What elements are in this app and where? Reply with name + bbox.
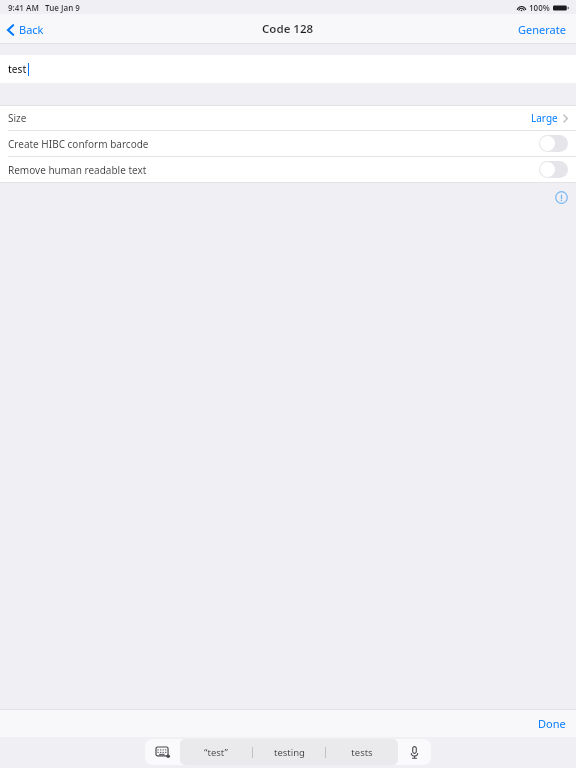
button[interactable]: Done (528, 711, 576, 736)
staticText: tests (351, 746, 373, 759)
staticText: Create HIBC conform barcode (8, 137, 149, 151)
button[interactable]: “test” (180, 739, 252, 765)
staticText: Remove human readable text (8, 163, 147, 177)
staticText: 9:41 AM (8, 2, 39, 13)
staticText: testing (274, 746, 305, 759)
other: Create HIBC conform barcode (539, 135, 568, 152)
button[interactable]: tests (326, 739, 398, 765)
staticText: Large (531, 111, 558, 125)
button[interactable]: Keyboard (145, 739, 180, 765)
staticText: test (8, 62, 27, 76)
other: Remove human readable text (539, 161, 568, 178)
staticText: Generate (518, 22, 566, 37)
button[interactable]: Info (555, 191, 568, 204)
button[interactable]: Size (0, 106, 576, 130)
button[interactable]: Generate (508, 17, 576, 42)
staticText: Size (8, 111, 27, 125)
button[interactable]: Back (0, 18, 54, 41)
staticText: Tue Jan 9 (45, 2, 80, 13)
staticText: Done (538, 716, 566, 731)
staticText: “test” (204, 746, 228, 759)
staticText: 100% (529, 2, 550, 13)
staticText: Code 128 (262, 21, 314, 37)
button[interactable]: Dictation (398, 739, 431, 765)
button[interactable]: Remove human readable text (0, 157, 576, 182)
button[interactable]: Create HIBC conform barcode (0, 131, 576, 156)
button[interactable]: testing (253, 739, 325, 765)
staticText: Back (19, 22, 44, 37)
